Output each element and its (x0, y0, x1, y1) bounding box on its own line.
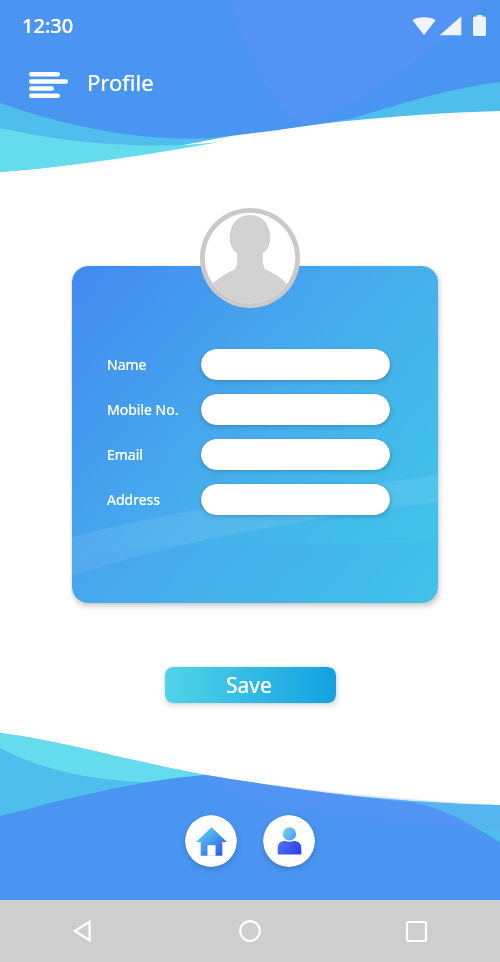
other: Recents (407, 922, 426, 941)
button[interactable]: Email (201, 439, 390, 470)
button[interactable]: Menu (21, 62, 69, 108)
staticText: Mobile No. (107, 400, 179, 419)
staticText: 12:30 (22, 12, 74, 39)
other: Home (239, 920, 261, 942)
staticText: Name (107, 355, 147, 374)
button[interactable]: Mobile No. (201, 394, 390, 425)
other: Back (72, 920, 94, 942)
staticText: Address (107, 490, 160, 509)
staticText: Email (107, 445, 143, 464)
button[interactable]: Name (201, 349, 390, 380)
staticText: Profile (87, 67, 154, 97)
button[interactable]: Address (201, 484, 390, 515)
staticText: Save (226, 671, 272, 700)
button[interactable]: Save (165, 667, 336, 703)
button[interactable]: Home (185, 815, 237, 867)
button[interactable]: Profile (263, 815, 315, 867)
